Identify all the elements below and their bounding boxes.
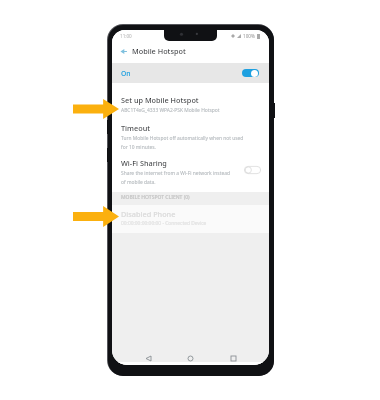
button[interactable]: Home [184, 352, 197, 365]
button[interactable]: Timeout [112, 123, 269, 150]
staticText: Turn Mobile Hotspot off automatically wh… [121, 135, 244, 150]
button[interactable]: Set up Mobile Hotspot [112, 95, 269, 114]
button[interactable]: Recent apps [227, 352, 240, 365]
staticText: Disabled Phone [121, 209, 176, 219]
staticText: ABC1T4xG_4333 WPA2-PSK Mobile Hotspot [121, 107, 220, 114]
staticText: Timeout [121, 123, 150, 133]
button[interactable]: Turn off [242, 69, 259, 77]
button[interactable]: Turn on [244, 166, 261, 174]
staticText: Mobile Hotspot [132, 46, 186, 56]
button[interactable]: On [112, 63, 269, 83]
staticText: On [121, 69, 131, 78]
staticText: 100% [243, 33, 255, 39]
staticText: MOBILE HOTSPOT CLIENT (0) [121, 194, 190, 201]
staticText: Wi-Fi Sharing [121, 158, 167, 168]
staticText: Set up Mobile Hotspot [121, 95, 199, 105]
staticText: Share the internet from a Wi-Fi network … [121, 170, 230, 185]
button[interactable]: Back [117, 45, 129, 57]
button[interactable]: Disabled Phone [112, 205, 269, 233]
button[interactable]: Back [112, 41, 269, 61]
button[interactable]: Back [142, 352, 155, 365]
staticText: 11:00 [120, 33, 132, 39]
button[interactable]: Wi-Fi Sharing [112, 158, 269, 185]
staticText: 00:00:00:00:00:00 - Connected Device [121, 220, 207, 227]
